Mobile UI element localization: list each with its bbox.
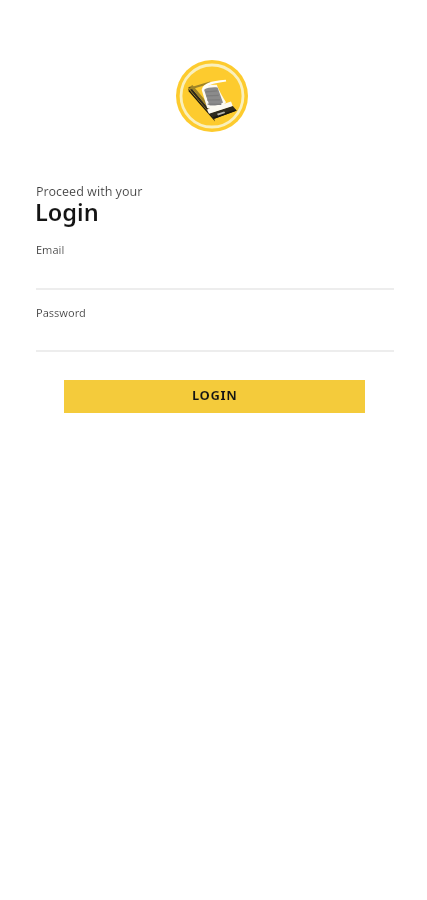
staticText: LOGIN	[192, 386, 238, 404]
staticText: Proceed with your	[36, 183, 143, 200]
button[interactable]: Password	[36, 299, 394, 351]
other: App logo	[176, 60, 248, 132]
button[interactable]: Email	[36, 236, 394, 289]
staticText: Email	[36, 242, 65, 257]
staticText: Login	[35, 196, 99, 228]
button[interactable]: LOGIN	[64, 380, 365, 413]
staticText: Password	[36, 305, 86, 320]
